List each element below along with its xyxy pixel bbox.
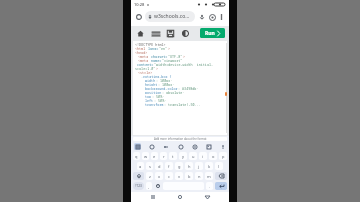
button[interactable]: More options: [217, 12, 226, 21]
button[interactable]: Image: [205, 143, 212, 150]
button[interactable]: ,: [146, 182, 152, 190]
button[interactable]: Voice search: [197, 12, 207, 22]
button[interactable]: Settings: [191, 143, 198, 150]
button[interactable]: k: [205, 162, 213, 170]
button[interactable]: w3schools.com/t: [145, 11, 195, 22]
button[interactable]: h: [185, 162, 193, 170]
button[interactable]: s: [146, 162, 153, 170]
staticText: w: [144, 154, 148, 159]
button[interactable]: n: [195, 172, 203, 180]
staticText: >: [156, 66, 159, 70]
staticText: Add more information about the format: [154, 137, 207, 141]
button[interactable]: Add more information about the format: [133, 137, 227, 141]
button[interactable]: x: [155, 172, 163, 180]
button[interactable]: t: [169, 152, 177, 160]
button[interactable]: p: [219, 152, 227, 160]
button[interactable]: m: [205, 172, 213, 180]
button[interactable]: Sticker: [177, 143, 184, 150]
staticText: s: [149, 164, 151, 169]
staticText: <!DOCTYPE html>: [135, 42, 166, 46]
button[interactable]: Back: [202, 192, 212, 202]
staticText: height: [145, 82, 158, 86]
button[interactable]: i: [199, 152, 207, 160]
button[interactable]: g: [175, 162, 183, 170]
button[interactable]: Toggle theme: [180, 28, 191, 39]
staticText: h: [188, 164, 191, 169]
button[interactable]: Recents: [148, 192, 158, 202]
staticText: >: [168, 46, 171, 50]
button[interactable]: l: [215, 162, 223, 170]
button[interactable]: Enter: [215, 182, 227, 190]
button[interactable]: Menu: [150, 28, 161, 39]
staticText: lang=: [146, 46, 159, 50]
button[interactable]: Account: [207, 12, 217, 22]
staticText: background-color: [145, 86, 178, 90]
button[interactable]: v: [175, 172, 183, 180]
staticText: ,: [148, 184, 150, 189]
staticText: : 100px;: [158, 82, 175, 86]
button[interactable]: Reload: [134, 12, 144, 22]
button[interactable]: Emoji: [148, 143, 155, 150]
button[interactable]: f: [165, 162, 173, 170]
staticText: content=: [137, 62, 154, 66]
button[interactable]: Run: [200, 28, 225, 38]
button[interactable]: ?123: [133, 182, 144, 190]
button[interactable]: e: [151, 152, 158, 160]
button[interactable]: w: [142, 152, 149, 160]
staticText: : 100px;: [156, 78, 173, 82]
button[interactable]: y: [179, 152, 187, 160]
button[interactable]: c: [165, 172, 173, 180]
button[interactable]: Translate: [162, 143, 169, 150]
button[interactable]: u: [189, 152, 197, 160]
button[interactable]: j: [195, 162, 203, 170]
button[interactable]: q: [133, 152, 140, 160]
staticText: o: [212, 154, 215, 159]
staticText: y: [182, 154, 185, 159]
staticText: ?123: [135, 184, 142, 188]
button[interactable]: Voice: [219, 143, 226, 150]
button[interactable]: a: [137, 162, 144, 170]
button[interactable]: Backspace: [215, 172, 227, 180]
staticText: f: [168, 164, 170, 169]
button[interactable]: o: [209, 152, 217, 160]
staticText: r: [163, 154, 165, 159]
staticText: <meta: [138, 58, 149, 62]
staticText: top: [145, 94, 152, 98]
staticText: t: [172, 154, 174, 159]
button[interactable]: .: [206, 182, 213, 190]
staticText: q: [135, 154, 138, 159]
staticText: : 50%;: [154, 98, 167, 102]
staticText: g: [178, 164, 181, 169]
staticText: Run: [205, 30, 215, 37]
staticText: width: [145, 78, 156, 82]
staticText: b: [188, 174, 191, 179]
staticText: .: [209, 184, 211, 189]
staticText: c: [168, 174, 170, 179]
staticText: v: [178, 174, 181, 179]
staticText: "UTF-8": [168, 54, 183, 58]
button[interactable]: <!DOCTYPE html>: [133, 41, 227, 135]
staticText: "en": [159, 46, 168, 50]
button[interactable]: Home: [135, 28, 146, 39]
button[interactable]: Clipboard: [134, 143, 141, 150]
button[interactable]: d: [155, 162, 163, 170]
button[interactable]: Shift: [133, 172, 144, 180]
staticText: <meta: [138, 54, 149, 58]
staticText: <head>: [135, 50, 148, 54]
button[interactable]: z: [146, 172, 153, 180]
staticText: position: [145, 90, 162, 94]
staticText: i: [202, 154, 204, 159]
staticText: d: [158, 164, 161, 169]
staticText: l: [218, 164, 220, 169]
button[interactable]: Emoji: [154, 182, 161, 190]
staticText: e: [153, 154, 156, 159]
button[interactable]: Save: [165, 28, 176, 39]
staticText: w3schools.com/t: [154, 13, 192, 20]
button[interactable]: r: [160, 152, 167, 160]
staticText: left: [145, 98, 154, 102]
button[interactable]: Home: [175, 192, 185, 202]
staticText: : 50%;: [152, 94, 165, 98]
button[interactable]: b: [185, 172, 193, 180]
staticText: n: [198, 174, 201, 179]
